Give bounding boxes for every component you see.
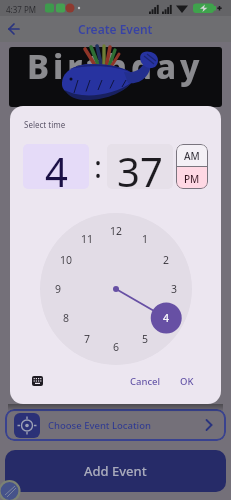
staticText: 4 [45,144,68,189]
staticText: 9 [55,282,62,296]
button[interactable]: PM [176,167,208,189]
staticText: 6 [113,340,120,354]
staticText: AM [184,149,200,163]
staticText: Birthday [27,47,204,89]
button[interactable]: OK [173,371,201,391]
button[interactable]: 37 [107,144,173,189]
staticText: 4 [163,311,170,325]
button[interactable]: AM [176,144,208,167]
button[interactable]: Add Event [5,450,226,492]
button[interactable] [32,376,43,386]
staticText: 7 [84,332,91,346]
staticText: 5 [142,332,149,346]
staticText: Select time [24,119,66,130]
button[interactable] [6,21,22,37]
staticText: 8 [63,311,70,325]
staticText: 37 [117,144,163,189]
staticText: 10 [60,253,73,267]
staticText: 12 [110,224,123,238]
button[interactable]: Choose Event Location [5,409,226,441]
staticText: Add Event [84,462,147,480]
button[interactable]: 4 [23,144,89,189]
staticText: Cancel [130,375,161,388]
staticText: Choose Event Location [48,419,151,432]
staticText: PM [184,172,200,186]
staticText: OK [180,375,194,388]
staticText: Create Event [78,21,153,37]
staticText: 11 [81,232,94,246]
staticText: 1 [142,232,149,246]
button[interactable]: Cancel [125,371,165,391]
staticText: 2 [163,253,170,267]
staticText: 3 [171,282,178,296]
staticText: 4:37 PM [6,4,37,15]
staticText: : [94,146,103,187]
